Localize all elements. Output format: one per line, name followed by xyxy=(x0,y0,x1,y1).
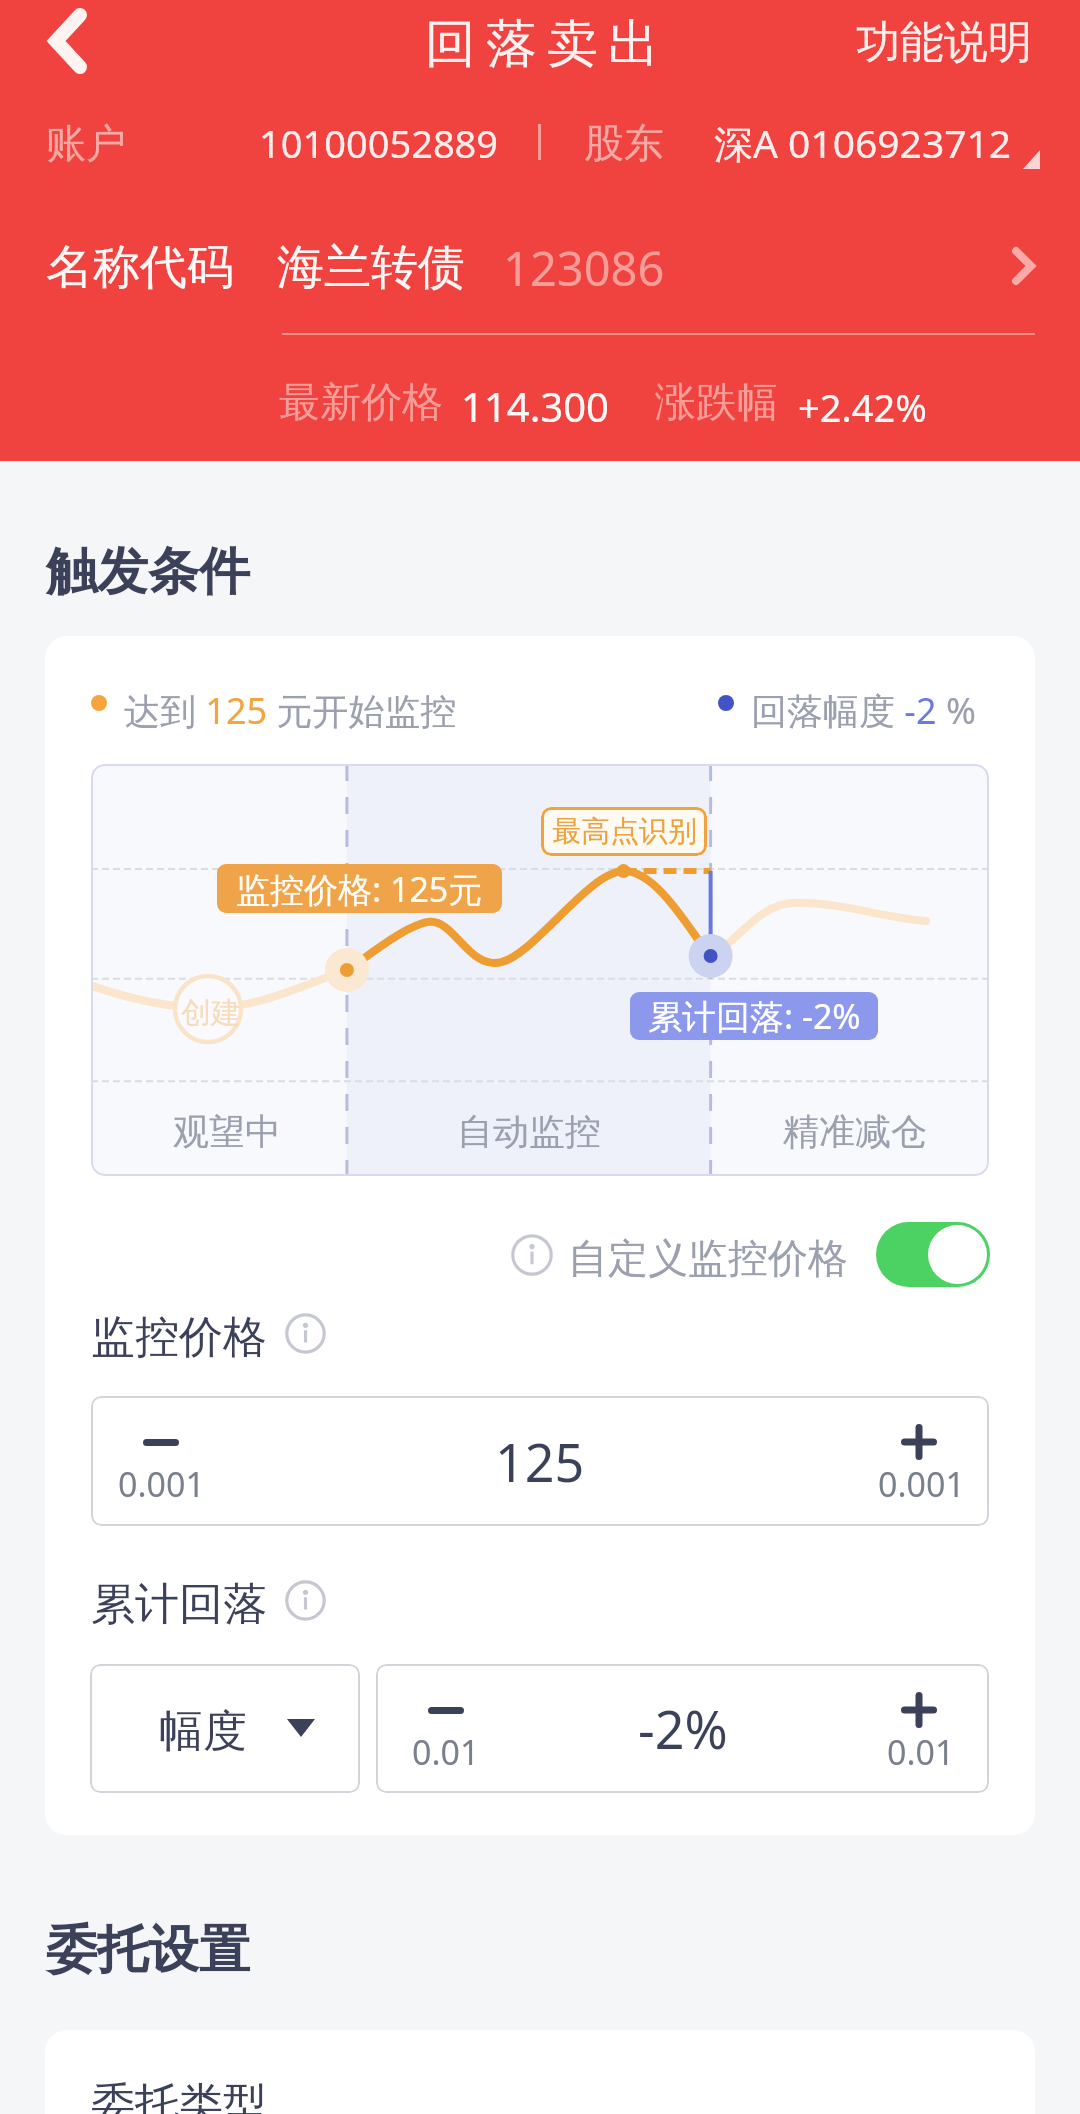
staticText: 0.001 xyxy=(118,1461,205,1507)
staticText: 最新价格 xyxy=(279,377,443,429)
button[interactable]: Decrease xyxy=(91,1396,360,1526)
staticText: 监控价格: 125元 xyxy=(236,866,483,912)
button[interactable]: Toggle custom monitor price xyxy=(876,1222,990,1287)
staticText: 账户 xyxy=(46,118,126,168)
staticText: 10100052889 xyxy=(259,117,499,169)
staticText: 自定义监控价格 xyxy=(568,1233,848,1283)
staticText: 125 xyxy=(495,1426,585,1497)
staticText: 幅度 xyxy=(159,1704,247,1759)
button[interactable]: Back xyxy=(8,0,128,110)
staticText: 观望中 xyxy=(173,1109,281,1154)
button[interactable]: Increase xyxy=(720,1396,989,1526)
staticText: 委托设置 xyxy=(46,1918,250,1982)
staticText: 精准减仓 xyxy=(783,1109,927,1154)
staticText: 委托类型 xyxy=(91,2077,267,2114)
staticText: 名称代码 xyxy=(46,238,234,297)
staticText: 0.001 xyxy=(878,1461,965,1507)
button[interactable]: Increase xyxy=(805,1664,989,1793)
staticText: +2.42% xyxy=(798,381,927,433)
staticText: 累计回落: -2% xyxy=(648,993,861,1039)
staticText: 累计回落 xyxy=(91,1577,267,1632)
staticText: 123086 xyxy=(503,236,665,300)
staticText: 海兰转债 xyxy=(277,238,465,297)
staticText: 0.01 xyxy=(887,1729,955,1775)
staticText: 创建 xyxy=(181,994,241,1032)
staticText: 自动监控 xyxy=(457,1109,601,1154)
staticText: 涨跌幅 xyxy=(655,377,778,429)
staticText: 达到 125 元开始监控 xyxy=(124,686,457,735)
button[interactable]: 名称代码 xyxy=(0,222,1080,308)
staticText: 最高点识别 xyxy=(552,813,697,850)
staticText: 触发条件 xyxy=(46,540,250,604)
staticText: 回落卖出 xyxy=(420,12,664,76)
staticText: 回落幅度 -2 % xyxy=(751,686,976,735)
staticText: -2% xyxy=(638,1693,728,1764)
staticText: 114.300 xyxy=(461,379,609,433)
button[interactable]: 功能说明 xyxy=(856,15,1032,70)
button[interactable]: Decrease xyxy=(376,1664,560,1793)
staticText: 监控价格 xyxy=(91,1310,267,1365)
button[interactable]: 账户 xyxy=(0,100,1080,180)
staticText: 深A 0106923712 xyxy=(714,116,1012,169)
staticText: 股东 xyxy=(584,118,664,168)
staticText: 0.01 xyxy=(412,1729,480,1775)
button[interactable]: 幅度 xyxy=(90,1664,360,1793)
